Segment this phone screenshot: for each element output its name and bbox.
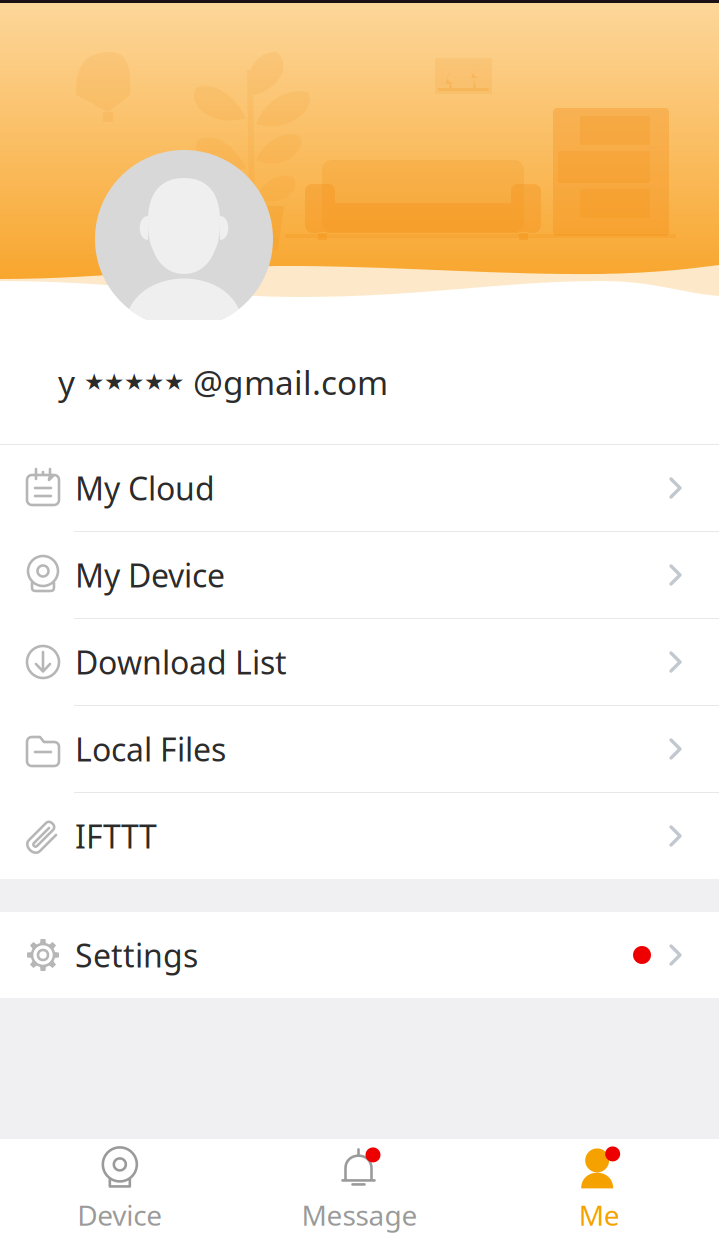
button[interactable]: IFTTT [0,793,719,879]
staticText: Local Files [75,728,226,770]
staticText: @gmail.com [184,360,388,404]
staticText: Settings [75,934,198,976]
staticText: Device [77,1196,162,1234]
button[interactable]: Message [240,1140,479,1240]
staticText: My Cloud [75,467,215,509]
button[interactable]: Local Files [0,706,719,792]
staticText: Message [301,1196,417,1234]
button[interactable]: My Cloud [0,445,719,531]
staticText: Download List [75,641,287,683]
staticText: My Device [75,554,225,596]
button[interactable]: Me [479,1140,719,1240]
button[interactable]: Device [0,1140,240,1240]
staticText: Me [579,1196,620,1234]
button[interactable]: Download List [0,619,719,705]
staticText: ★★★★★ [84,369,184,395]
staticText: y [58,360,84,404]
staticText: IFTTT [75,815,157,857]
button[interactable]: Settings [0,912,719,998]
button[interactable]: My Device [0,532,719,618]
